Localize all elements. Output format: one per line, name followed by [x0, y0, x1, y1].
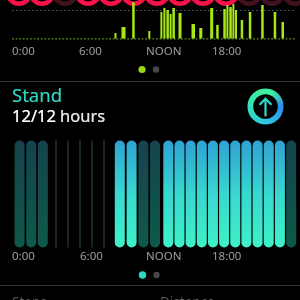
- staticText: hours: [60, 104, 106, 126]
- staticText: NOON: [146, 248, 182, 264]
- staticText: 0:00: [12, 248, 35, 264]
- staticText: Distance: [160, 293, 215, 300]
- staticText: 6:00: [79, 43, 102, 59]
- staticText: NOON: [146, 43, 182, 59]
- staticText: Stand: [12, 82, 63, 107]
- staticText: 6:00: [80, 248, 103, 264]
- button[interactable]: [247, 88, 284, 125]
- staticText: 0:00: [12, 43, 35, 59]
- staticText: 18:00: [212, 43, 242, 59]
- staticText: Steps: [12, 293, 47, 300]
- staticText: 18:00: [212, 248, 242, 264]
- staticText: 12/12: [12, 104, 56, 126]
